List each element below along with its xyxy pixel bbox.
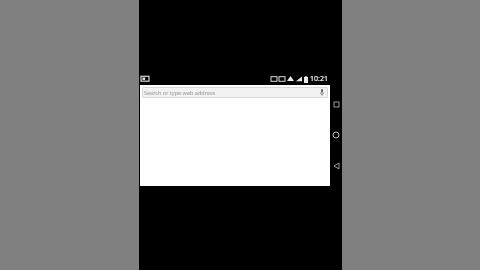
- button[interactable]: Voice search: [317, 88, 326, 97]
- staticText: Search or type web address: [144, 89, 317, 96]
- button[interactable]: Home: [330, 129, 342, 141]
- button[interactable]: Search or type web address: [142, 87, 328, 98]
- button[interactable]: Recent apps: [330, 98, 342, 110]
- button[interactable]: Back: [330, 160, 342, 172]
- staticText: 10:21: [310, 74, 328, 84]
